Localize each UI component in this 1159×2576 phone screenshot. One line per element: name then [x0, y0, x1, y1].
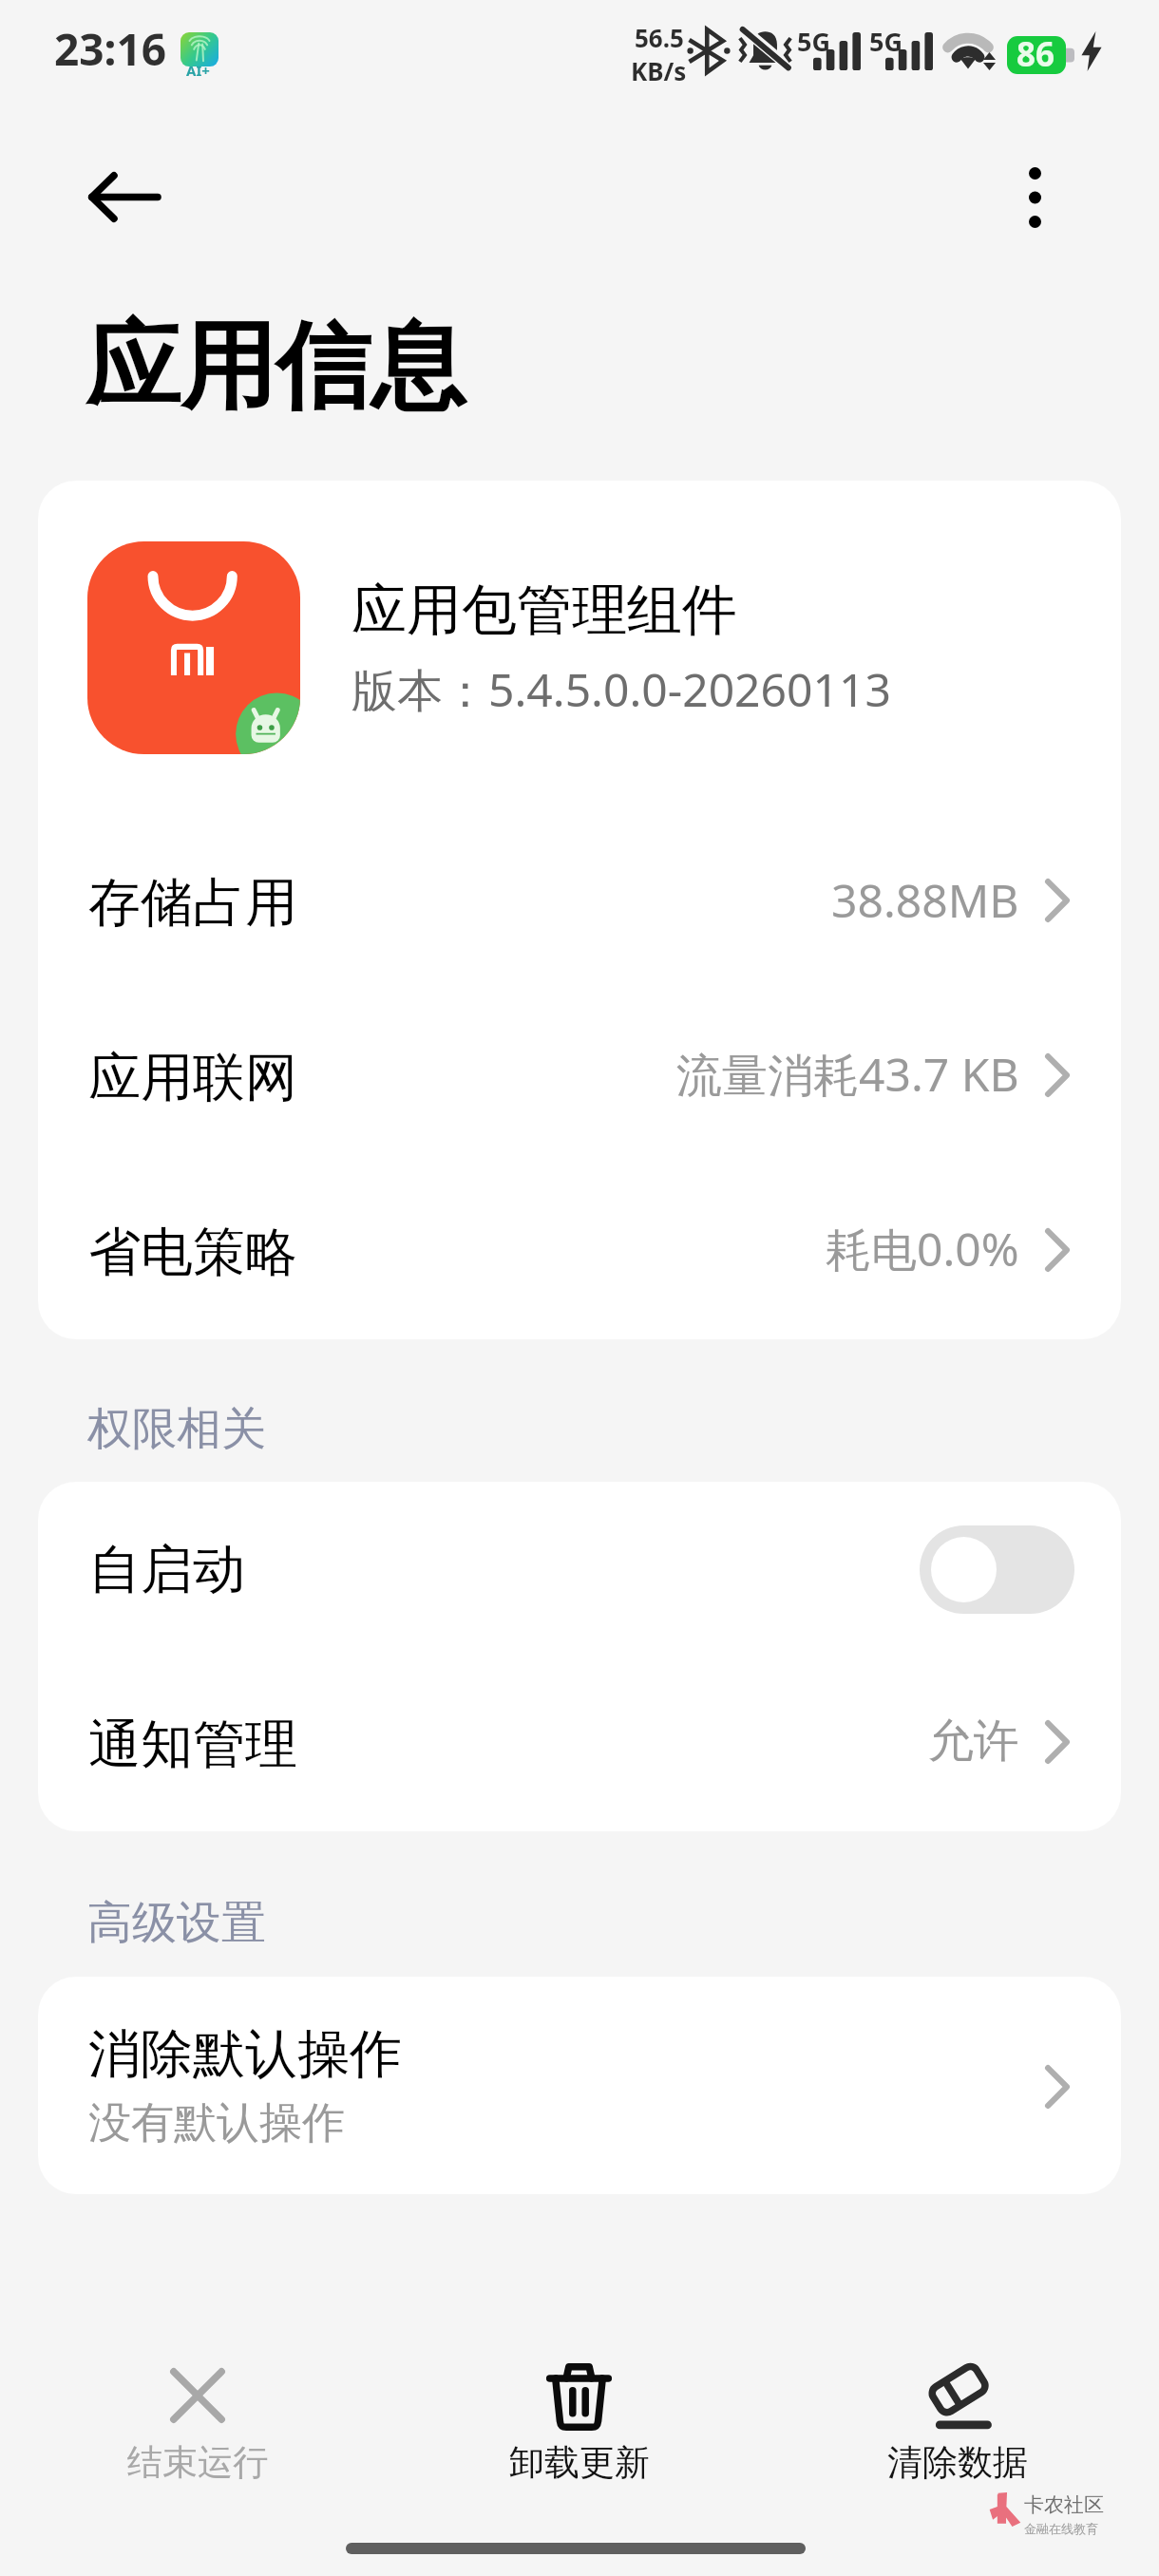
staticText: 38.88MB	[831, 869, 1019, 931]
staticText: 23:16	[54, 19, 167, 79]
staticText: 5G	[797, 24, 830, 59]
button[interactable]: 存储占用	[38, 815, 1121, 990]
staticText: 权限相关	[87, 1401, 266, 1457]
staticText: 金融在线教育	[1024, 2521, 1098, 2536]
button[interactable]: Uninstall updates	[480, 2342, 679, 2494]
staticText: 没有默认操作	[88, 2096, 345, 2150]
staticText: 通知管理	[88, 1712, 297, 1777]
staticText: 耗电0.0%	[826, 1218, 1019, 1280]
staticText: AI+	[186, 61, 210, 80]
staticText: 允许	[928, 1713, 1019, 1770]
button[interactable]: 自启动	[38, 1482, 1121, 1657]
staticText: 应用联网	[88, 1045, 297, 1110]
button[interactable]: 消除默认操作	[38, 1977, 1121, 2194]
staticText: 56.5	[635, 21, 684, 54]
staticText: 结束运行	[127, 2440, 268, 2485]
staticText: KB/s	[631, 54, 687, 87]
button[interactable]: Clear data	[858, 2342, 1057, 2494]
button[interactable]: More options	[982, 145, 1087, 250]
staticText: 省电策略	[88, 1220, 297, 1285]
staticText: 应用信息	[85, 308, 465, 427]
staticText: 清除数据	[887, 2440, 1028, 2485]
staticText: 消除默认操作	[88, 2021, 402, 2087]
staticText: 存储占用	[88, 870, 297, 936]
button[interactable]: 省电策略	[38, 1165, 1121, 1339]
button[interactable]: Back	[70, 144, 175, 249]
staticText: 应用包管理组件	[351, 576, 737, 645]
staticText: 86	[1016, 31, 1055, 77]
staticText: 高级设置	[87, 1895, 266, 1951]
button[interactable]: 应用联网	[38, 990, 1121, 1165]
staticText: 卡农社区	[1024, 2492, 1104, 2517]
staticText: 5G	[869, 24, 902, 59]
button[interactable]: 通知管理	[38, 1657, 1121, 1831]
staticText: 流量消耗43.7 KB	[676, 1043, 1019, 1106]
button[interactable]: Auto start toggle	[920, 1525, 1074, 1614]
button[interactable]: Force stop	[98, 2342, 297, 2494]
staticText: 卸载更新	[509, 2440, 650, 2485]
staticText: 自启动	[88, 1537, 245, 1602]
staticText: 版本：5.4.5.0.0-20260113	[351, 658, 891, 721]
